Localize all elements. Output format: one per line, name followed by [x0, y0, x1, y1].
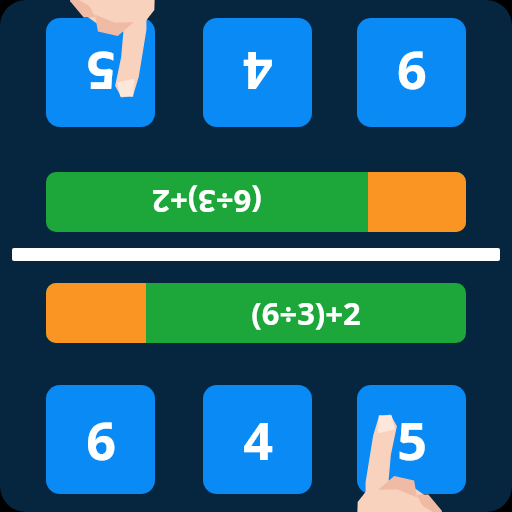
button[interactable]: (6÷3)+2	[46, 283, 466, 343]
button[interactable]: 9	[357, 18, 466, 127]
button[interactable]: 4	[203, 18, 312, 127]
button[interactable]: 5	[357, 385, 466, 494]
staticText: 9	[397, 37, 427, 108]
staticText: 4	[243, 37, 273, 108]
staticText: 4	[243, 404, 273, 475]
button[interactable]: 4	[203, 385, 312, 494]
button[interactable]: 6	[46, 385, 155, 494]
staticText: 5	[397, 404, 427, 475]
button[interactable]: (6÷3)+2	[46, 172, 466, 232]
staticText: (6÷3)+2	[251, 292, 361, 334]
staticText: 5	[86, 37, 116, 108]
other: Pointing hand	[0, 0, 512, 512]
staticText: (6÷3)+2	[152, 181, 262, 223]
other: Pointing hand	[0, 0, 512, 512]
staticText: 6	[86, 404, 116, 475]
button[interactable]: 5	[46, 18, 155, 127]
